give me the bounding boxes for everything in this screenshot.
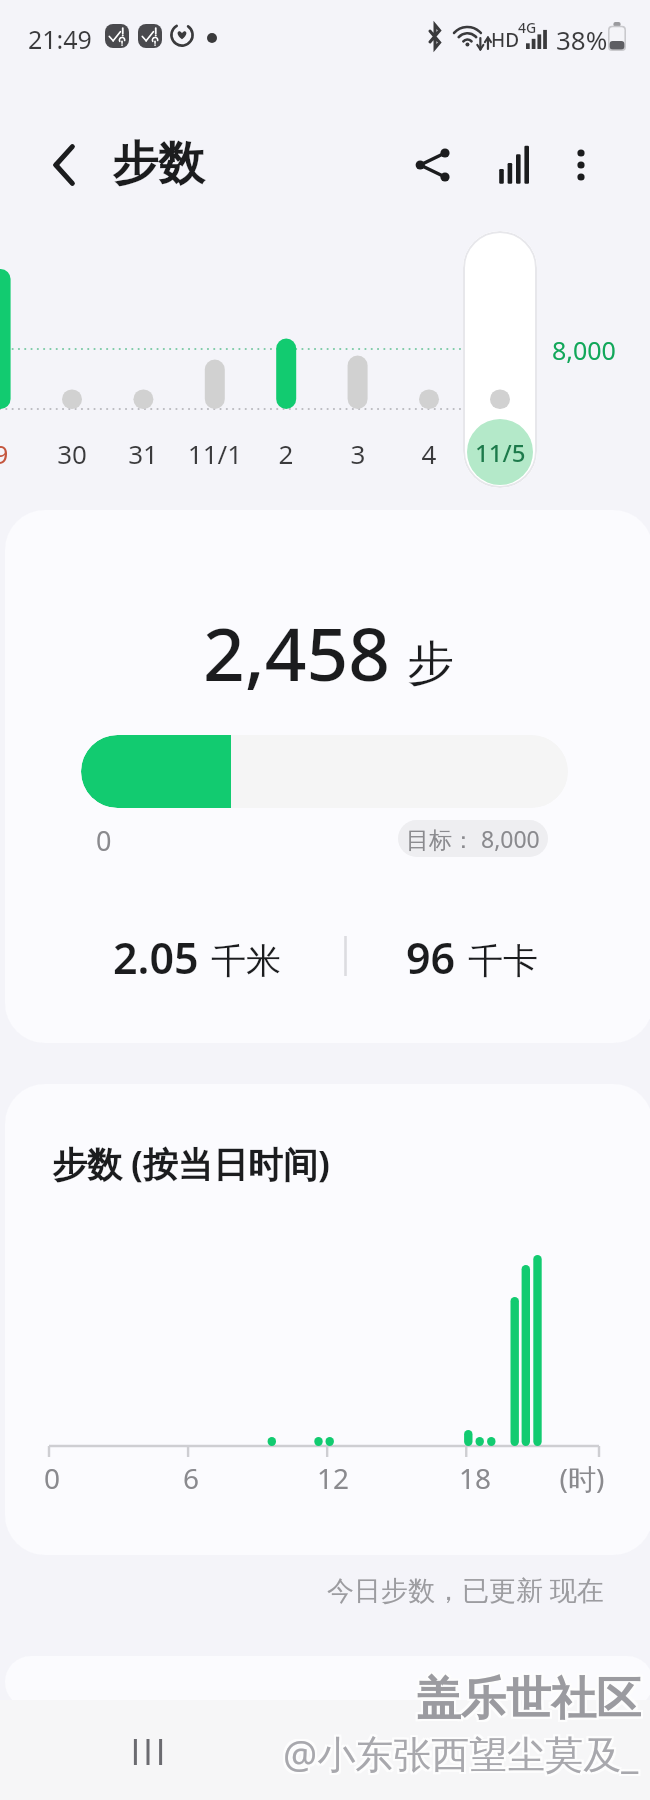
staticText: 步数 (按当日时间) — [52, 1140, 330, 1186]
staticText: 盖乐世社区 — [418, 1671, 643, 1728]
staticText: 6 — [141, 1459, 241, 1497]
staticText: 31 — [83, 436, 203, 471]
staticText: (时) — [532, 1459, 632, 1497]
button[interactable]: More options — [546, 130, 616, 200]
staticText: @小东张西望尘莫及_ — [283, 1727, 639, 1779]
staticText: @小东张西望尘莫及_ — [285, 1729, 641, 1781]
staticText: 盖乐世社区 — [416, 1671, 641, 1728]
staticText: 4 — [369, 436, 489, 471]
staticText: 9 — [0, 436, 61, 471]
button[interactable] — [463, 231, 537, 488]
staticText: 3 — [298, 436, 418, 471]
button[interactable] — [81, 735, 568, 808]
staticText: 目标： 8,000 — [406, 823, 540, 854]
staticText: @小东张西望尘莫及_ — [285, 1725, 641, 1777]
staticText: 盖乐世社区 — [416, 1673, 641, 1730]
staticText: 2 — [226, 436, 346, 471]
staticText: 30 — [12, 436, 132, 471]
staticText: 8,000 — [552, 333, 616, 367]
staticText: 38% — [556, 22, 608, 57]
staticText: 11/5 — [475, 436, 526, 469]
staticText: 千卡 — [468, 939, 538, 983]
staticText: 盖乐世社区 — [414, 1673, 639, 1730]
staticText: @小东张西望尘莫及_ — [283, 1725, 639, 1777]
staticText: 盖乐世社区 — [414, 1671, 639, 1728]
staticText: 盖乐世社区 — [416, 1669, 641, 1726]
staticText: 18 — [425, 1459, 525, 1497]
staticText: 21:49 — [28, 22, 92, 56]
button[interactable]: Back — [30, 130, 100, 200]
staticText: 0 — [2, 1459, 102, 1497]
staticText: 2.05 — [113, 928, 199, 984]
staticText: 4G — [518, 18, 537, 37]
staticText: @小东张西望尘莫及_ — [281, 1729, 637, 1781]
button[interactable]: Recents — [108, 1712, 188, 1792]
staticText: @小东张西望尘莫及_ — [281, 1725, 637, 1777]
button[interactable]: 2.05 — [82, 928, 312, 984]
staticText: 96 — [406, 928, 456, 984]
staticText: 2,458 — [203, 603, 390, 702]
staticText: 12 — [283, 1459, 383, 1497]
staticText: 步 — [407, 634, 454, 693]
button[interactable]: 96 — [357, 928, 587, 984]
staticText: 步数 — [112, 135, 204, 193]
staticText: 11/1 — [155, 436, 275, 471]
staticText: 盖乐世社区 — [414, 1669, 639, 1726]
staticText: 盖乐世社区 — [418, 1673, 643, 1730]
staticText: @小东张西望尘莫及_ — [283, 1729, 639, 1781]
staticText: HD — [491, 27, 520, 53]
staticText: @小东张西望尘莫及_ — [285, 1727, 641, 1779]
button[interactable]: 步数 — [112, 128, 204, 200]
staticText: @小东张西望尘莫及_ — [281, 1727, 637, 1779]
button[interactable]: 目标： 8,000 — [398, 820, 548, 857]
staticText: 千米 — [211, 939, 281, 983]
button[interactable]: Chart — [477, 130, 547, 200]
staticText: 0 — [96, 822, 112, 859]
button[interactable]: Share — [398, 130, 468, 200]
staticText: 盖乐世社区 — [418, 1669, 643, 1726]
button[interactable]: 11/5 — [467, 419, 533, 485]
staticText: 今日步数，已更新 现在 — [204, 1571, 604, 1608]
button[interactable]: 步数 (按当日时间) — [52, 1140, 330, 1186]
